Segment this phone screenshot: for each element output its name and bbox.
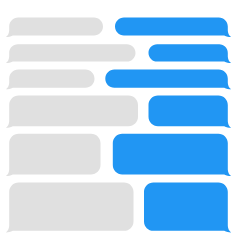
button[interactable]: Chat conversation — [0, 0, 238, 250]
